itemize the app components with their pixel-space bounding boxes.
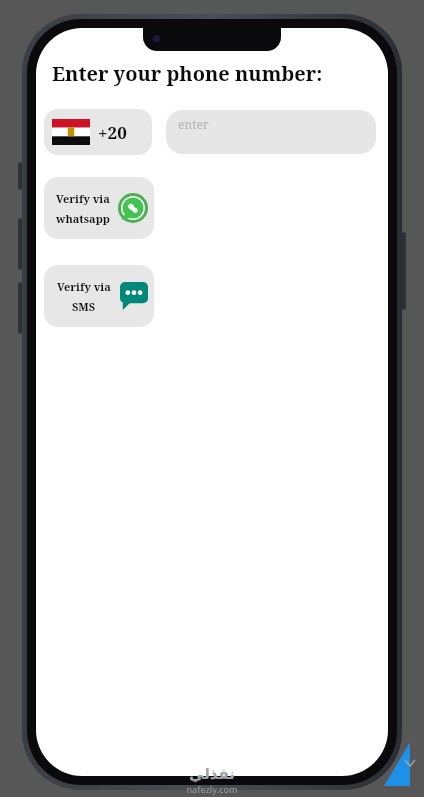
button[interactable]: Verify via [44, 177, 154, 239]
staticText: +20 [98, 121, 127, 144]
button[interactable]: enter [166, 110, 376, 154]
staticText: whatsapp [56, 211, 110, 226]
button[interactable]: +20 [44, 109, 152, 155]
button[interactable]: Verify via [44, 265, 154, 327]
staticText: enter [178, 116, 209, 132]
staticText: Enter your phone number: [52, 60, 323, 87]
other: Verify via SMS [120, 282, 148, 310]
staticText: Verify via [57, 279, 111, 294]
staticText: Verify via [56, 191, 110, 206]
staticText: nafezly.com [186, 783, 238, 795]
staticText: SMS [72, 299, 96, 314]
other: Verify via WhatsApp [118, 193, 148, 223]
other: Expand [404, 758, 416, 768]
staticText: نفذلي [189, 765, 235, 782]
